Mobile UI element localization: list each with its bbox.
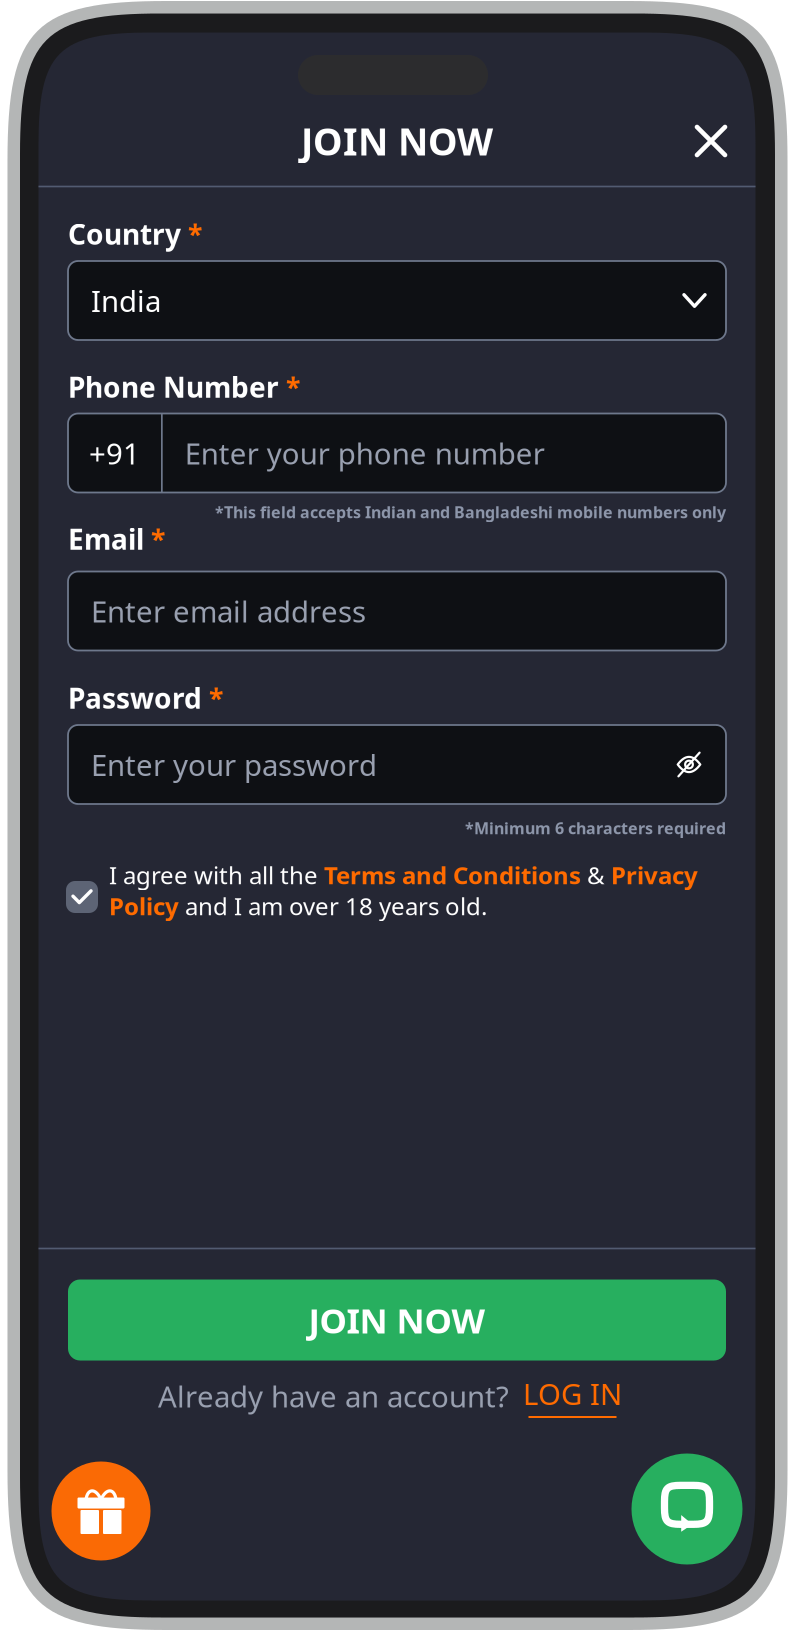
- staticText: Email: [68, 520, 144, 558]
- staticText: I agree with all the: [109, 859, 324, 891]
- button[interactable]: Close: [680, 110, 742, 172]
- staticText: Terms and Conditions: [324, 859, 581, 891]
- staticText: *: [188, 216, 202, 252]
- staticText: *This field accepts Indian and Banglades…: [215, 501, 726, 523]
- button[interactable]: LOG IN: [523, 1374, 622, 1418]
- staticText: *: [286, 369, 300, 405]
- staticText: Enter your phone number: [185, 433, 545, 472]
- button[interactable]: Terms and Conditions: [324, 859, 581, 891]
- staticText: Password: [68, 679, 202, 717]
- staticText: and I am over 18 years old.: [179, 890, 487, 922]
- staticText: Enter email address: [91, 591, 366, 630]
- staticText: Phone Number: [68, 368, 279, 406]
- staticText: Privacy: [611, 859, 698, 891]
- staticText: Country: [68, 215, 181, 253]
- staticText: Policy: [109, 890, 179, 922]
- button[interactable]: India: [68, 261, 726, 340]
- staticText: &: [581, 859, 611, 891]
- button[interactable]: Show password: [666, 741, 712, 787]
- button[interactable]: Privacy: [611, 859, 698, 891]
- staticText: India: [91, 281, 161, 320]
- button[interactable]: I agree to the terms and conditions: [66, 881, 98, 913]
- staticText: +91: [89, 433, 140, 472]
- button[interactable]: Chat support: [631, 1453, 742, 1564]
- staticText: *: [209, 680, 223, 716]
- staticText: Enter your password: [91, 745, 377, 784]
- button[interactable]: JOIN NOW: [68, 1279, 726, 1360]
- button[interactable]: Policy: [109, 890, 179, 922]
- staticText: *Minimum 6 characters required: [465, 817, 726, 839]
- staticText: JOIN NOW: [301, 116, 493, 166]
- staticText: Already have an account?: [158, 1376, 509, 1415]
- button[interactable]: Rewards: [51, 1461, 150, 1560]
- staticText: *: [151, 521, 165, 557]
- staticText: LOG IN: [523, 1374, 622, 1413]
- staticText: JOIN NOW: [308, 1297, 485, 1343]
